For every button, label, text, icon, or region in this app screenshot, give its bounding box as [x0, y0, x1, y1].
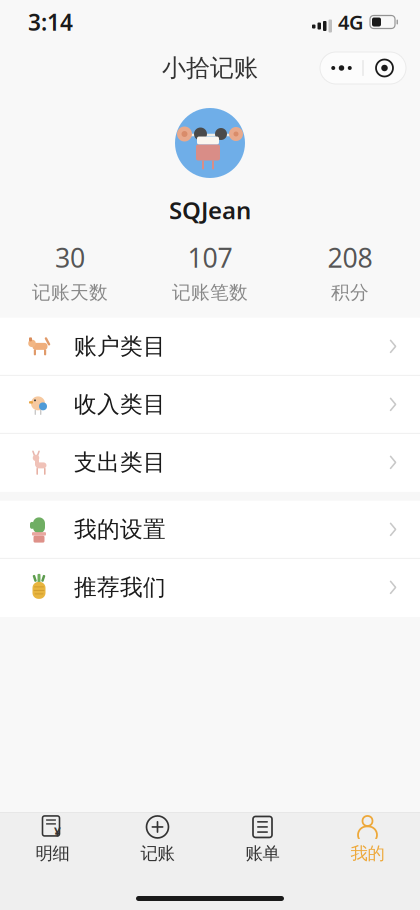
button[interactable]: 推荐我们 — [0, 559, 420, 617]
staticText: 记账天数 — [32, 281, 108, 304]
staticText: SQJean — [169, 194, 251, 226]
button[interactable]: 记账 — [105, 813, 210, 867]
button[interactable]: ¥ — [0, 813, 105, 867]
staticText: 记账笔数 — [172, 281, 248, 304]
button[interactable]: 账单 — [210, 813, 315, 867]
staticText: 208 — [327, 240, 372, 275]
staticText: 3:14 — [28, 7, 73, 37]
staticText: 明细 — [35, 843, 69, 864]
staticText: 记账 — [140, 843, 174, 864]
button[interactable]: 账户类目 — [0, 318, 420, 376]
button[interactable]: More — [320, 52, 362, 84]
staticText: 30 — [55, 240, 85, 275]
staticText: 账户类目 — [74, 332, 166, 360]
staticText: 我的设置 — [74, 515, 166, 543]
button[interactable]: 我的 — [315, 813, 420, 867]
staticText: 支出类目 — [74, 448, 166, 476]
staticText: 账单 — [245, 843, 279, 864]
button[interactable]: 收入类目 — [0, 376, 420, 434]
staticText: 小拾记账 — [162, 53, 258, 83]
staticText: 107 — [187, 240, 232, 275]
staticText: 推荐我们 — [74, 573, 166, 601]
staticText: 积分 — [331, 281, 369, 304]
button[interactable]: 我的设置 — [0, 501, 420, 559]
staticText: 收入类目 — [74, 390, 166, 418]
staticText: 我的 — [350, 843, 384, 864]
staticText: ¥ — [54, 824, 61, 840]
button[interactable]: 支出类目 — [0, 434, 420, 492]
button[interactable]: Close — [363, 52, 405, 84]
staticText: 4G — [338, 9, 364, 35]
